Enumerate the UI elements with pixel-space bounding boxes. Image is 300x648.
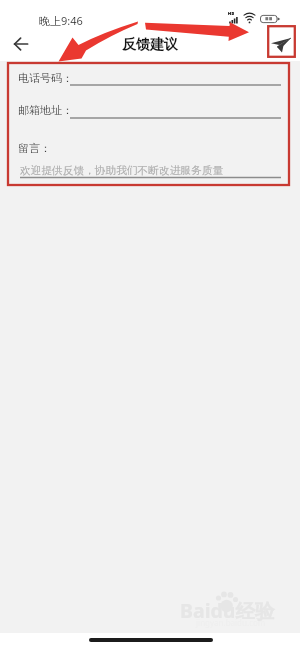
staticText: 晚上9:46 — [39, 13, 83, 28]
staticText: 电话号码： — [18, 71, 73, 85]
staticText: jingyan.baidu.com — [196, 617, 266, 628]
staticText: Baidu经验 — [180, 597, 275, 624]
staticText: 邮箱地址： — [18, 103, 73, 117]
staticText: 欢迎提供反馈，协助我们不断改进服务质量 — [20, 164, 224, 177]
staticText: 反馈建议 — [122, 36, 178, 54]
staticText: 留言： — [18, 141, 51, 155]
button[interactable]: Send — [267, 25, 296, 58]
button[interactable]: Back — [8, 31, 34, 57]
